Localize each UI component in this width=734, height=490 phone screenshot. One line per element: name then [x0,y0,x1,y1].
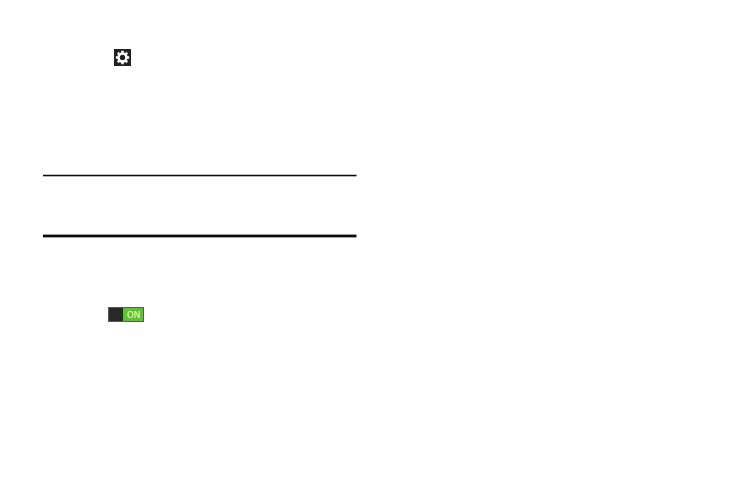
button[interactable]: Toggle, on [108,307,144,322]
button[interactable]: Settings [114,49,131,66]
staticText: ON [127,309,141,321]
